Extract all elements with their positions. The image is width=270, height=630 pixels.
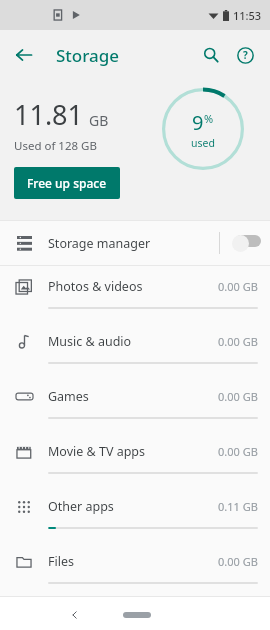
staticText: 0.00 GB <box>218 279 258 294</box>
staticText: 9 <box>192 109 204 136</box>
staticText: 0.00 GB <box>218 444 258 459</box>
staticText: Files <box>48 553 218 570</box>
button[interactable]: Games <box>0 376 270 431</box>
button[interactable]: Help <box>228 38 262 72</box>
button[interactable]: Back <box>62 602 88 628</box>
staticText: 0.00 GB <box>218 334 258 349</box>
button[interactable]: Photos & videos <box>0 266 270 321</box>
staticText: % <box>204 111 214 126</box>
staticText: Photos & videos <box>48 278 218 295</box>
button[interactable]: Music & audio <box>0 321 270 376</box>
staticText: Games <box>48 388 218 405</box>
staticText: Storage <box>56 44 120 67</box>
staticText: 11.81 <box>14 96 84 133</box>
button[interactable]: Home <box>123 612 151 618</box>
button[interactable]: Storage manager toggle <box>220 221 270 265</box>
button[interactable]: Movie & TV apps <box>0 431 270 486</box>
staticText: used <box>191 136 215 150</box>
staticText: Movie & TV apps <box>48 443 218 460</box>
staticText: ? <box>243 48 248 62</box>
staticText: 0.00 GB <box>218 554 258 569</box>
staticText: 11:53 <box>233 8 262 23</box>
button[interactable]: Other apps <box>0 486 270 541</box>
button[interactable]: Storage manager <box>0 221 270 265</box>
staticText: 0.00 GB <box>218 389 258 404</box>
staticText: Used of 128 GB <box>14 138 97 154</box>
staticText: Music & audio <box>48 333 218 350</box>
staticText: Storage manager <box>48 235 219 252</box>
button[interactable]: Free up space <box>14 167 120 199</box>
staticText: Other apps <box>48 498 218 515</box>
button[interactable]: Back <box>6 37 42 73</box>
staticText: GB <box>89 111 109 130</box>
staticText: 0.11 GB <box>218 499 258 514</box>
button[interactable]: Files <box>0 541 270 596</box>
button[interactable]: Search <box>194 38 228 72</box>
staticText: Free up space <box>27 175 107 191</box>
